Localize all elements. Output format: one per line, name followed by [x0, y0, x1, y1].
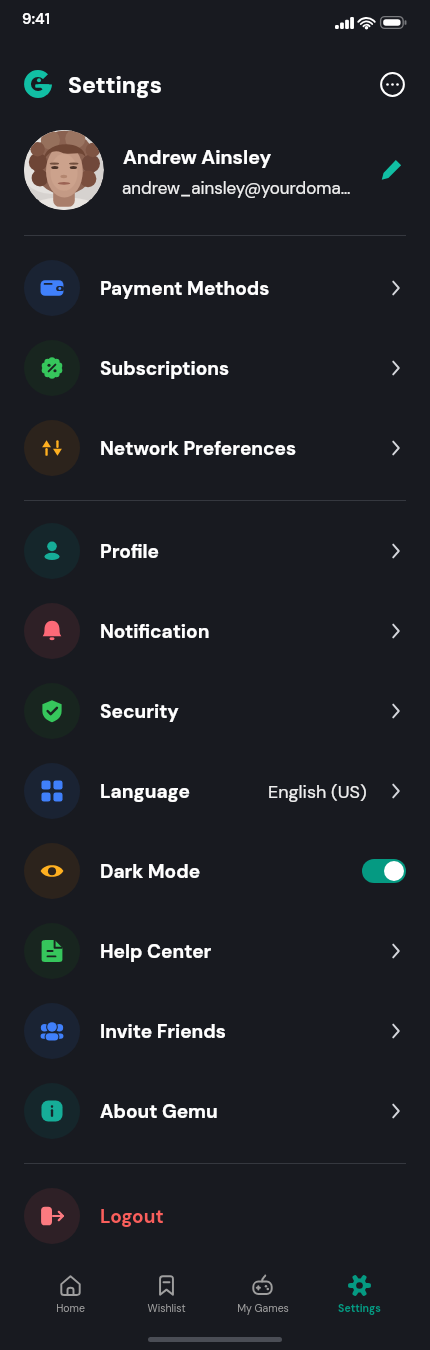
staticText: My Games [237, 1302, 289, 1316]
staticText: English (US) [268, 780, 367, 803]
staticText: Invite Friends [100, 1019, 226, 1044]
staticText: Logout [100, 1204, 164, 1229]
button[interactable]: Logout [0, 1176, 430, 1256]
staticText: 9:41 [22, 9, 50, 29]
button[interactable]: Home [22, 1274, 118, 1316]
button[interactable]: Dark Mode [0, 831, 430, 911]
staticText: Network Preferences [100, 436, 297, 461]
staticText: andrew_ainsley@yourdoma… [122, 177, 351, 199]
staticText: Payment Methods [100, 276, 270, 301]
button[interactable]: Security [0, 671, 430, 751]
staticText: Wishlist [147, 1302, 186, 1316]
button[interactable]: Dark mode toggle [362, 859, 406, 883]
staticText: Profile [100, 539, 159, 564]
staticText: About Gemu [100, 1099, 218, 1124]
staticText: Dark Mode [100, 859, 201, 884]
staticText: Subscriptions [100, 356, 230, 381]
button[interactable]: Notification [0, 591, 430, 671]
staticText: Home [56, 1302, 85, 1316]
staticText: Help Center [100, 939, 212, 964]
button[interactable]: Profile [0, 511, 430, 591]
button[interactable]: Wishlist [118, 1274, 214, 1316]
button[interactable]: Help Center [0, 911, 430, 991]
staticText: Settings [68, 70, 162, 100]
staticText: Security [100, 699, 179, 724]
button[interactable]: Subscriptions [0, 328, 430, 408]
staticText: Language [100, 779, 191, 804]
button[interactable]: Network Preferences [0, 408, 430, 488]
button[interactable]: Settings [311, 1274, 408, 1316]
button[interactable]: About Gemu [0, 1071, 430, 1151]
button[interactable]: Edit profile [376, 155, 406, 185]
staticText: Andrew Ainsley [123, 145, 272, 170]
button[interactable]: Invite Friends [0, 991, 430, 1071]
button[interactable]: Language [0, 751, 430, 831]
button[interactable]: More options [378, 70, 406, 98]
staticText: Notification [100, 619, 210, 644]
button[interactable]: My Games [214, 1274, 311, 1316]
staticText: Settings [338, 1302, 381, 1316]
button[interactable]: Payment Methods [0, 248, 430, 328]
